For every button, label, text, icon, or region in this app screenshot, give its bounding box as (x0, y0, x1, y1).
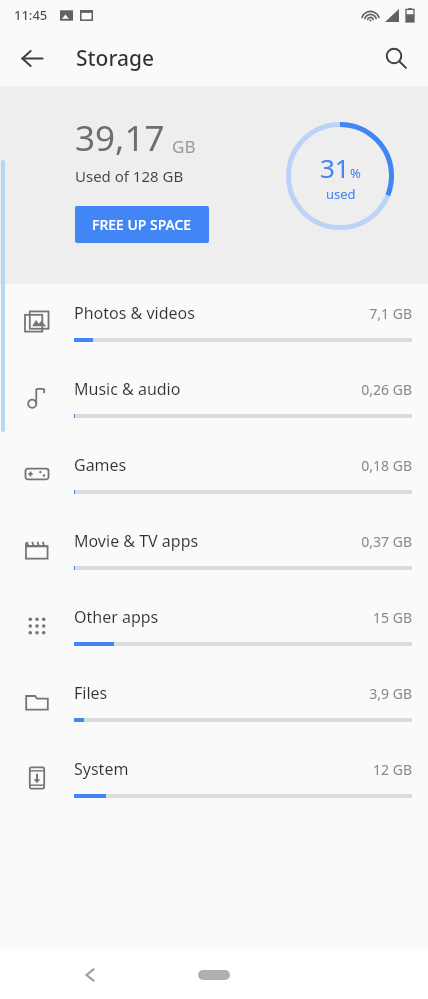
button[interactable]: Files (0, 664, 428, 740)
staticText: Storage (76, 44, 154, 73)
staticText: 12 GB (373, 760, 412, 779)
staticText: 0,37 GB (361, 532, 412, 551)
staticText: 3,9 GB (369, 684, 412, 703)
staticText: 15 GB (373, 608, 412, 627)
staticText: 0,18 GB (361, 456, 412, 475)
button[interactable]: Games (0, 436, 428, 512)
staticText: 0,26 GB (361, 380, 412, 399)
staticText: Other apps (74, 606, 159, 628)
staticText: 7,1 GB (369, 304, 412, 323)
staticText: Used of 128 GB (75, 166, 184, 186)
button[interactable]: Back (8, 34, 56, 82)
staticText: GB (172, 135, 196, 158)
staticText: FREE UP SPACE (92, 215, 192, 234)
staticText: 31 (320, 150, 350, 185)
staticText: 39,17 (75, 114, 165, 162)
button[interactable]: Movie & TV apps (0, 512, 428, 588)
button[interactable]: FREE UP SPACE (75, 206, 209, 243)
button[interactable]: Back (70, 955, 110, 995)
button[interactable]: Photos & videos (0, 284, 428, 360)
staticText: Movie & TV apps (74, 530, 199, 552)
staticText: System (74, 758, 129, 780)
staticText: % (350, 164, 361, 182)
button[interactable]: Home (186, 963, 242, 987)
staticText: 11:45 (14, 6, 48, 24)
staticText: Photos & videos (74, 302, 195, 324)
button[interactable]: Other apps (0, 588, 428, 664)
button[interactable]: System (0, 740, 428, 816)
button[interactable]: Music & audio (0, 360, 428, 436)
staticText: Games (74, 454, 127, 476)
staticText: Files (74, 682, 108, 704)
button[interactable]: Search (372, 34, 420, 82)
staticText: Music & audio (74, 378, 181, 400)
staticText: used (326, 185, 356, 203)
